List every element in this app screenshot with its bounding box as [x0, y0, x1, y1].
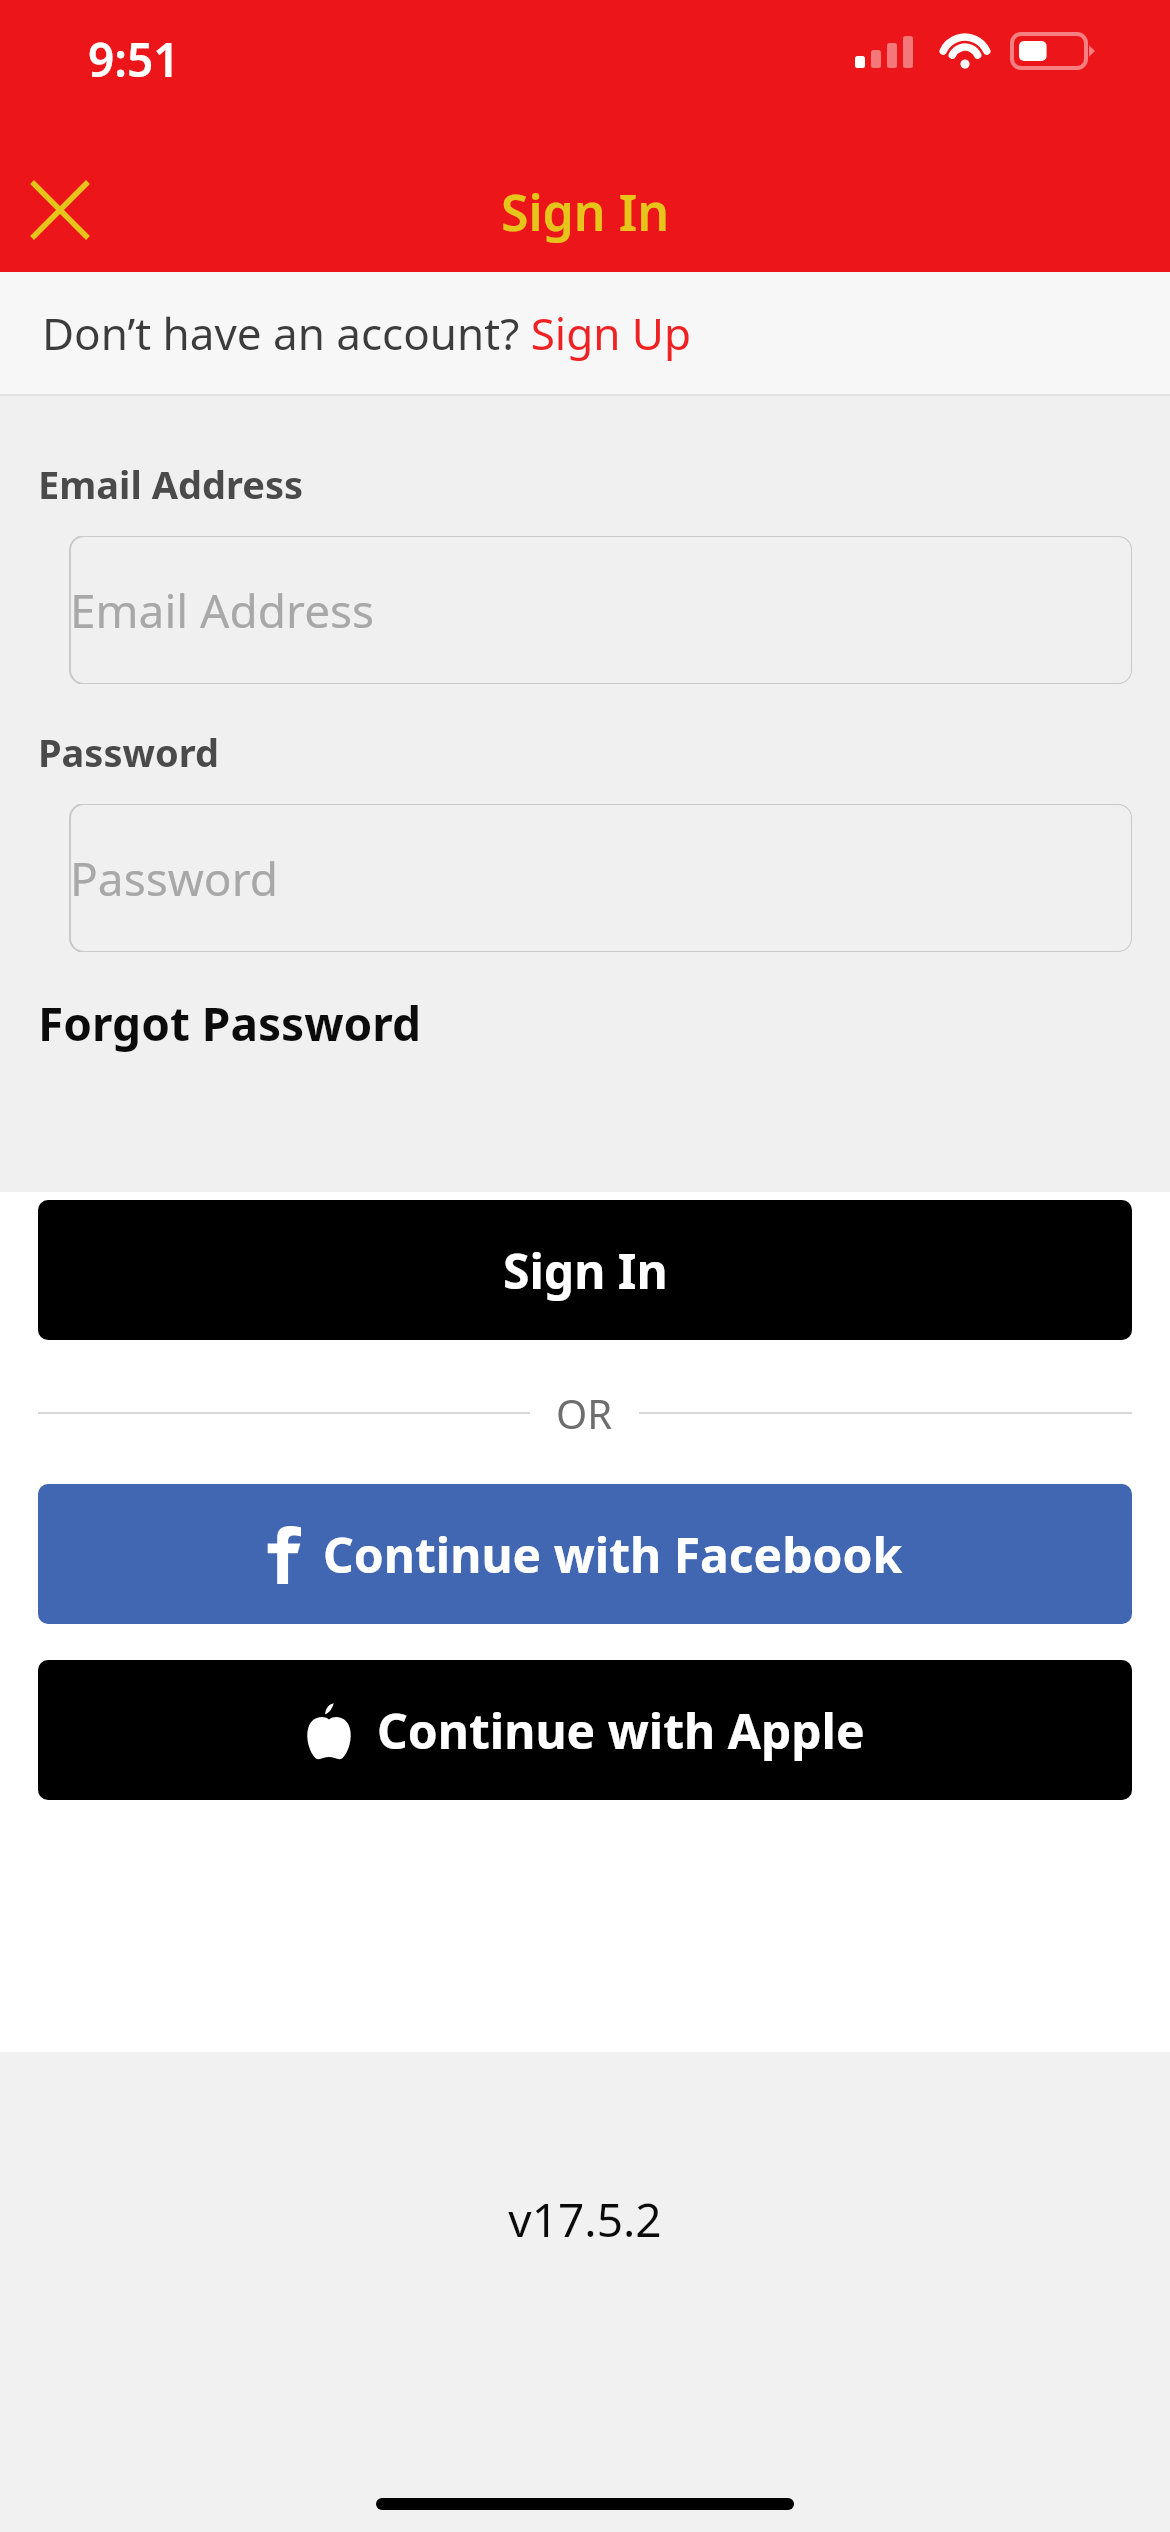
staticText: 9:51: [88, 28, 180, 91]
staticText: Email Address: [38, 458, 304, 510]
staticText: Password: [70, 847, 279, 910]
staticText: Sign In: [0, 178, 1170, 246]
staticText: Password: [38, 726, 220, 778]
button[interactable]: Email Address: [38, 536, 1132, 684]
staticText: Forgot Password: [38, 992, 421, 1055]
button[interactable]: Forgot Password: [38, 992, 421, 1055]
staticText: OR: [556, 1386, 613, 1440]
staticText: Continue with Facebook: [323, 1522, 903, 1587]
staticText: Don’t have an account? Sign Up: [42, 303, 692, 363]
button[interactable]: Password: [38, 804, 1132, 952]
staticText: Continue with Apple: [377, 1698, 865, 1763]
staticText: Sign In: [503, 1238, 668, 1303]
button[interactable]: Continue with Facebook: [38, 1484, 1132, 1624]
button[interactable]: Continue with Apple: [38, 1660, 1132, 1800]
button[interactable]: Close: [10, 160, 110, 260]
button[interactable]: Sign In: [38, 1200, 1132, 1340]
staticText: v17.5.2: [0, 2188, 1170, 2251]
button[interactable]: Don’t have an account? Sign Up: [0, 272, 1170, 394]
staticText: Email Address: [70, 579, 375, 642]
